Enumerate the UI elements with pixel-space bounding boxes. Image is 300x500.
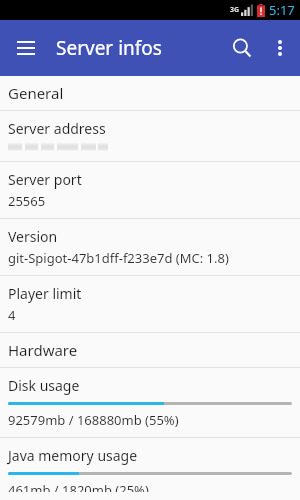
staticText: Player limit xyxy=(8,284,82,303)
staticText: 5:17 xyxy=(269,1,295,19)
staticText: Server infos xyxy=(56,35,162,61)
button[interactable]: Search xyxy=(220,26,264,70)
staticText: 3G xyxy=(230,5,240,15)
button[interactable]: Version xyxy=(0,219,300,275)
staticText: Server address xyxy=(8,119,106,138)
staticText: Java memory usage xyxy=(8,446,138,465)
staticText: 461mb / 1820mb (25%) xyxy=(8,481,149,492)
button[interactable]: Server address xyxy=(0,111,300,161)
staticText: 92579mb / 168880mb (55%) xyxy=(8,411,179,429)
button[interactable]: Open navigation drawer xyxy=(6,28,46,68)
button[interactable]: Disk usage xyxy=(0,368,300,437)
staticText: 4 xyxy=(8,306,16,324)
button[interactable]: Server port xyxy=(0,162,300,218)
button[interactable]: Java memory usage xyxy=(0,438,300,500)
staticText: 25565 xyxy=(8,192,46,210)
staticText: Hardware xyxy=(8,340,78,360)
staticText: General xyxy=(8,83,64,103)
staticText: git-Spigot-47b1dff-f233e7d (MC: 1.8) xyxy=(8,249,229,267)
button[interactable]: More options xyxy=(264,30,296,66)
staticText: Disk usage xyxy=(8,376,80,395)
staticText: Server port xyxy=(8,170,82,189)
button[interactable]: Player limit xyxy=(0,276,300,332)
staticText: Version xyxy=(8,227,58,246)
